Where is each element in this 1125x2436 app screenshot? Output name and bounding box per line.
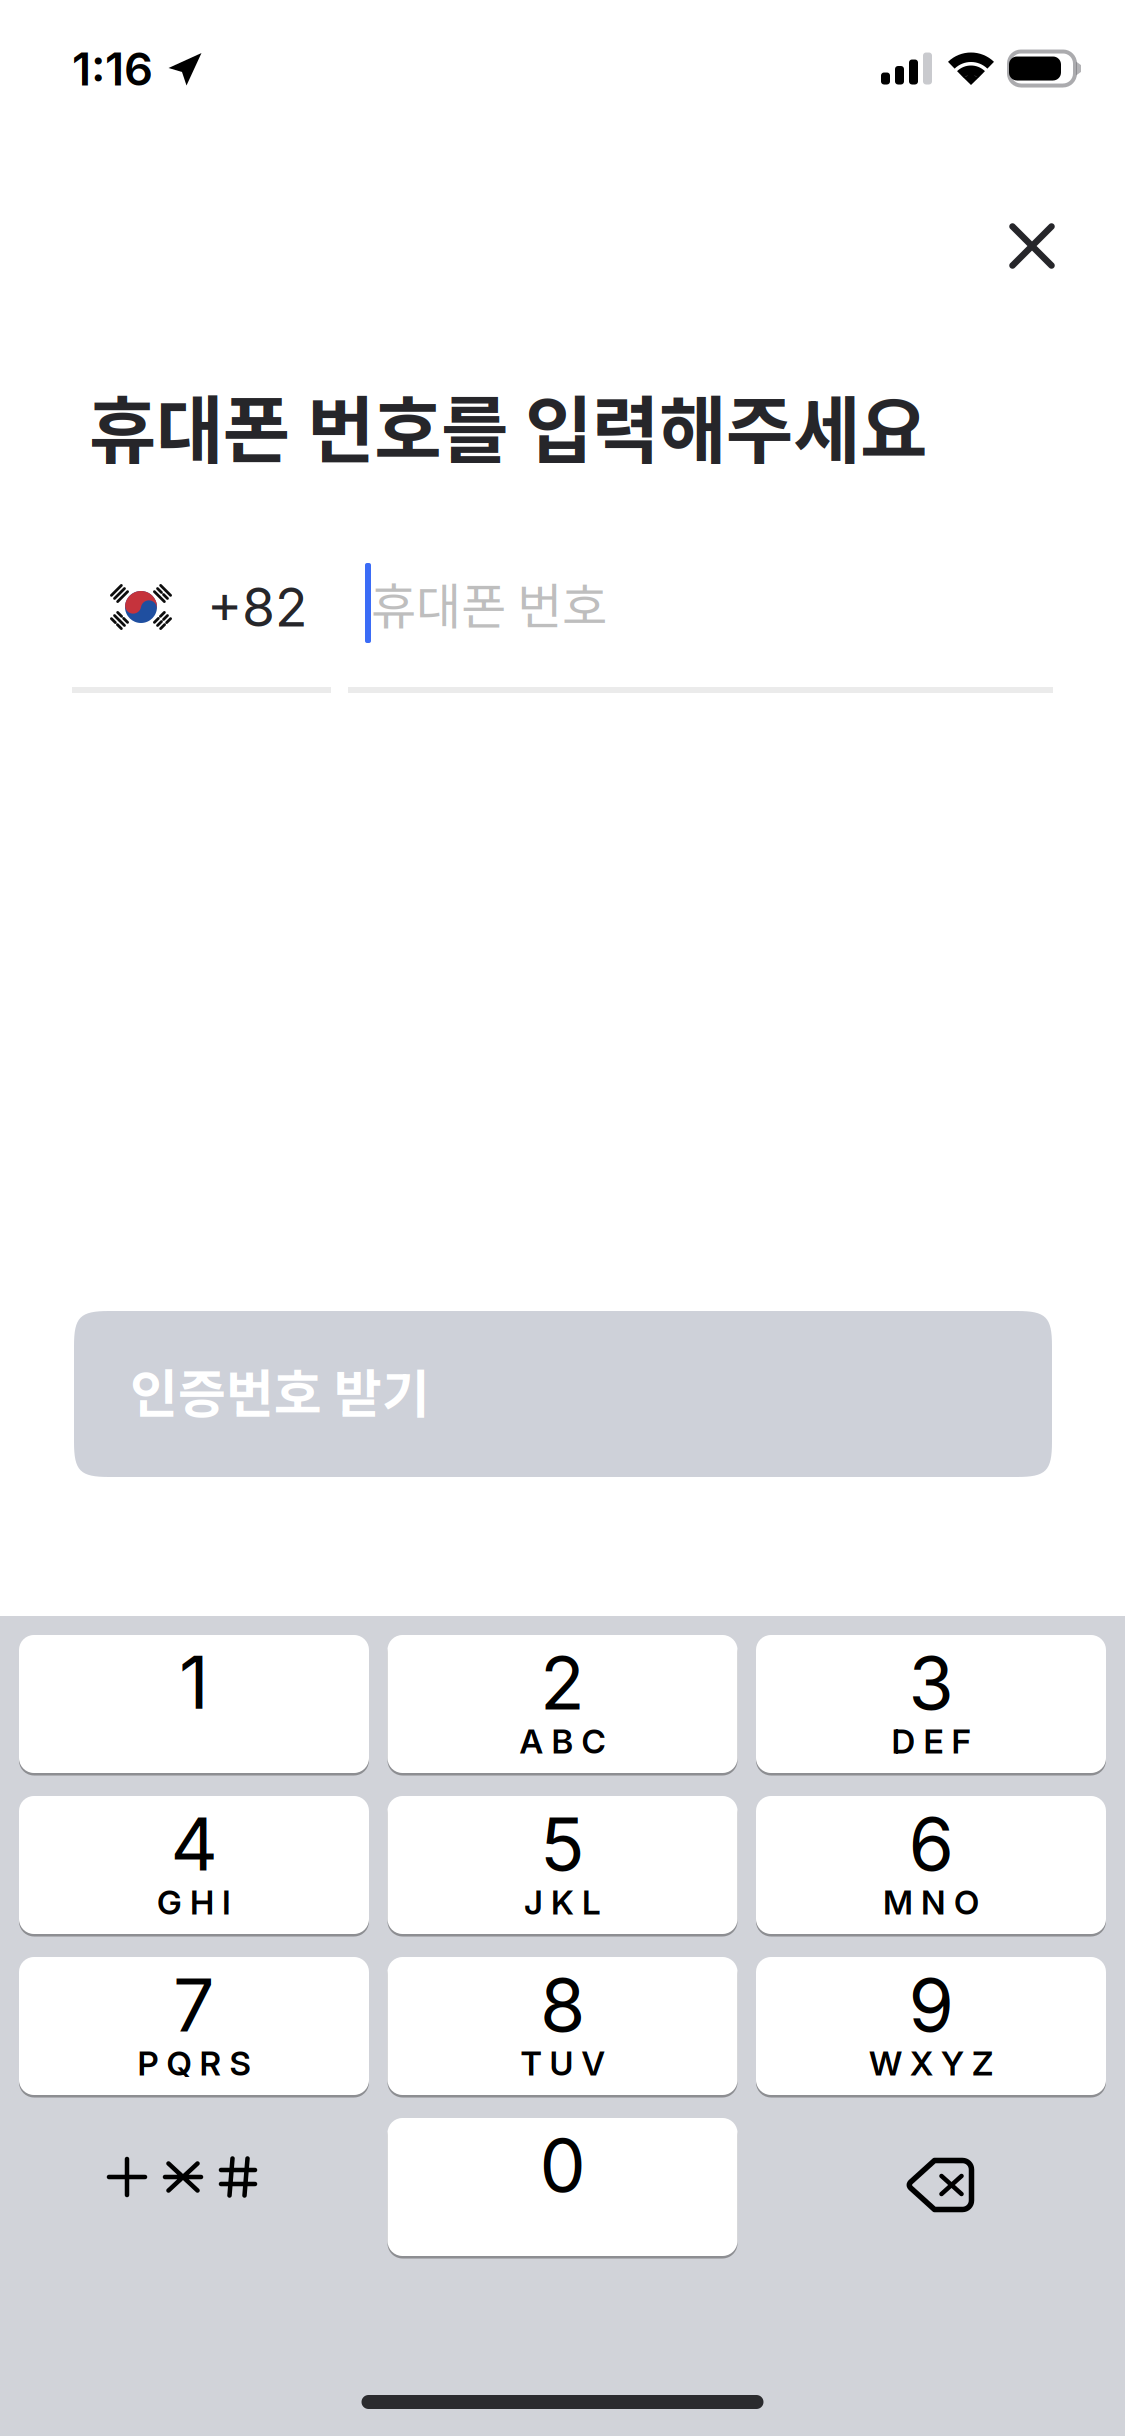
staticText: 3 <box>908 1638 953 1727</box>
staticText: 4 <box>170 1799 217 1888</box>
staticText: W X Y Z <box>869 2043 993 2083</box>
button[interactable]: 인증번호 받기 <box>74 1311 1052 1477</box>
staticText: J K L <box>524 1882 601 1922</box>
button[interactable]: 0 <box>387 2118 737 2256</box>
staticText: T U V <box>520 2043 604 2083</box>
staticText: +82 <box>207 575 308 639</box>
button[interactable]: 1 <box>19 1635 369 1773</box>
button[interactable]: 4 <box>19 1796 369 1934</box>
button[interactable]: 9 <box>756 1957 1106 2095</box>
button[interactable]: Delete <box>756 2118 1106 2256</box>
button[interactable]: 3 <box>756 1635 1106 1773</box>
staticText: 0 <box>539 2121 585 2209</box>
staticText: 1 <box>179 1638 209 1726</box>
staticText: G H I <box>157 1882 231 1922</box>
staticText: 8 <box>540 1960 585 2049</box>
staticText: 1:16 <box>72 42 153 96</box>
button[interactable]: Close <box>977 191 1087 301</box>
staticText: 인증번호 받기 <box>130 1352 430 1428</box>
staticText: 2 <box>540 1638 585 1727</box>
staticText: M N O <box>883 1882 979 1922</box>
staticText: 휴대폰 번호 <box>371 567 607 639</box>
staticText: 5 <box>540 1799 585 1888</box>
staticText: 6 <box>908 1799 953 1888</box>
staticText: 휴대폰 번호를 입력해주세요 <box>89 372 927 478</box>
staticText: 7 <box>173 1960 215 2049</box>
staticText: P Q R S <box>137 2043 250 2083</box>
button[interactable]: 8 <box>387 1957 737 2095</box>
button[interactable]: Symbols <box>19 2118 369 2256</box>
staticText: 9 <box>908 1960 953 2049</box>
button[interactable]: 6 <box>756 1796 1106 1934</box>
button[interactable]: 5 <box>387 1796 737 1934</box>
button[interactable]: 2 <box>387 1635 737 1773</box>
staticText: A B C <box>519 1721 605 1761</box>
button[interactable]: 7 <box>19 1957 369 2095</box>
staticText: D E F <box>891 1721 970 1761</box>
